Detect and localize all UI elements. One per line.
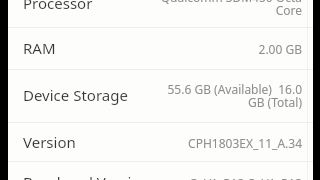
- staticText: Device Storage: [23, 85, 128, 105]
- staticText: Version: [23, 132, 76, 152]
- button[interactable]: Processor: [8, 0, 313, 28]
- staticText: Qualcomm SDM450 Octa Core: [160, 0, 302, 19]
- button[interactable]: Baseband Version: [8, 162, 313, 180]
- staticText: 2.00 GB: [160, 41, 302, 57]
- staticText: RAM: [23, 38, 56, 58]
- button[interactable]: Device Storage: [8, 69, 313, 123]
- staticText: CPH1803EX_11_A.34: [160, 135, 302, 151]
- staticText: Q_V1_P13,Q_V1_P13: [160, 175, 302, 180]
- staticText: Baseband Version: [23, 172, 150, 180]
- button[interactable]: RAM: [8, 28, 313, 70]
- staticText: 55.6 GB (Available) 16.0 GB (Total): [160, 81, 302, 111]
- staticText: Processor: [23, 0, 93, 13]
- button[interactable]: Version: [8, 123, 313, 162]
